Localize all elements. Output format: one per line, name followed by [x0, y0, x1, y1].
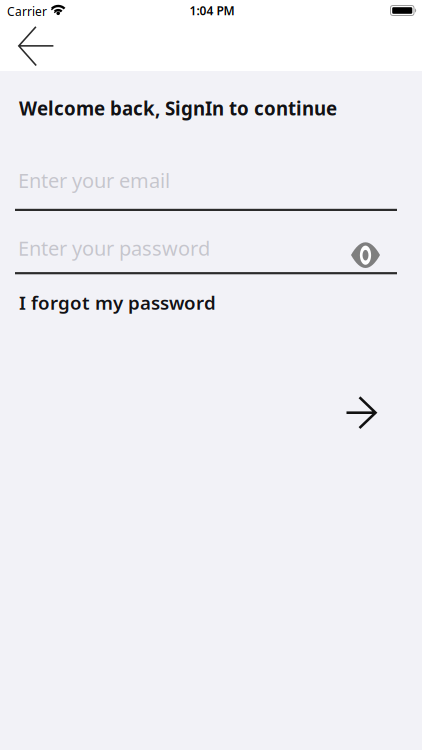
staticText: Enter your email [18, 167, 170, 193]
staticText: I forgot my password [19, 290, 216, 315]
staticText: Welcome back, SignIn to continue [19, 96, 337, 121]
button[interactable]: Sign in [345, 396, 378, 430]
button[interactable]: Enter your password [15, 235, 397, 279]
staticText: Enter your password [18, 235, 210, 261]
button[interactable]: I forgot my password [19, 290, 216, 315]
staticText: Carrier [7, 3, 47, 19]
button[interactable]: Show password [350, 241, 380, 268]
staticText: 1:04 PM [189, 2, 234, 18]
button[interactable]: Back [17, 25, 55, 67]
button[interactable]: Enter your email [15, 167, 397, 211]
